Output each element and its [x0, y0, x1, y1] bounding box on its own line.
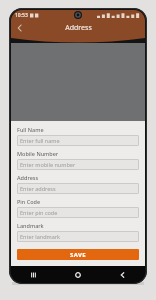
button[interactable]: Enter full name [17, 135, 139, 146]
staticText: 10:53 [15, 12, 28, 19]
staticText: Address [65, 23, 92, 33]
staticText: Full Name [17, 126, 44, 133]
staticText: Mobile Number [17, 150, 59, 157]
button[interactable]: Enter address [17, 183, 139, 194]
button[interactable]: Enter landmark [17, 231, 139, 242]
button[interactable]: Recent apps [11, 266, 55, 283]
staticText: Enter address [20, 185, 56, 192]
button[interactable]: SAVE [17, 249, 139, 260]
staticText: Enter landmark [20, 233, 60, 240]
staticText: Pin Code [17, 198, 41, 205]
button[interactable]: Back [100, 266, 145, 283]
button[interactable]: Enter mobile number [17, 159, 139, 170]
button[interactable]: Back [13, 21, 27, 35]
staticText: Enter pin code [20, 209, 58, 216]
staticText: SAVE [70, 251, 87, 259]
button[interactable]: Enter pin code [17, 207, 139, 218]
staticText: Enter mobile number [20, 161, 76, 168]
staticText: Address [17, 174, 39, 181]
button[interactable]: Home [55, 266, 100, 283]
staticText: Landmark [17, 222, 44, 229]
staticText: Enter full name [20, 137, 60, 144]
